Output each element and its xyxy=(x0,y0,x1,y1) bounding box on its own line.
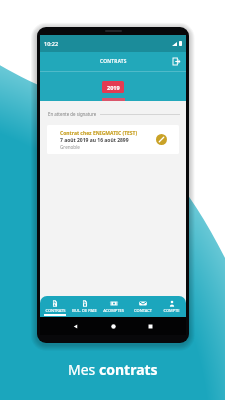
staticText: 10:22 xyxy=(44,40,59,47)
staticText: CONTRATS xyxy=(100,58,127,65)
other: Back xyxy=(73,324,78,329)
staticText: Contrat chez ENIGMATIC (TEST) xyxy=(60,130,138,137)
button[interactable]: Sign contract xyxy=(156,134,167,145)
button[interactable]: ACOMPTES xyxy=(99,296,128,317)
staticText: Mes xyxy=(68,360,99,379)
button[interactable]: CONTRATS xyxy=(40,296,70,317)
staticText: Grenoble xyxy=(60,144,80,150)
button[interactable]: Contrat chez ENIGMATIC (TEST) xyxy=(47,125,179,154)
staticText: En attente de signature xyxy=(48,111,97,117)
button[interactable]: 2019 xyxy=(102,81,124,93)
staticText: 2019 xyxy=(107,84,120,91)
other: Home xyxy=(111,324,116,329)
button[interactable]: CONTACT xyxy=(128,296,157,317)
button[interactable]: COMPTE xyxy=(157,296,186,317)
staticText: COMPTE xyxy=(163,308,180,313)
button[interactable]: BUL. DE PAIE xyxy=(70,296,99,317)
staticText: 7 août 2019 au 16 août 2899 xyxy=(60,137,129,144)
staticText: contrats xyxy=(99,360,158,379)
staticText: CONTACT xyxy=(134,308,152,313)
button[interactable]: Log out xyxy=(170,55,183,68)
staticText: CONTRATS xyxy=(45,308,66,313)
other: Recent apps xyxy=(148,324,153,329)
staticText: ACOMPTES xyxy=(103,308,124,313)
staticText: BUL. DE PAIE xyxy=(72,308,97,313)
